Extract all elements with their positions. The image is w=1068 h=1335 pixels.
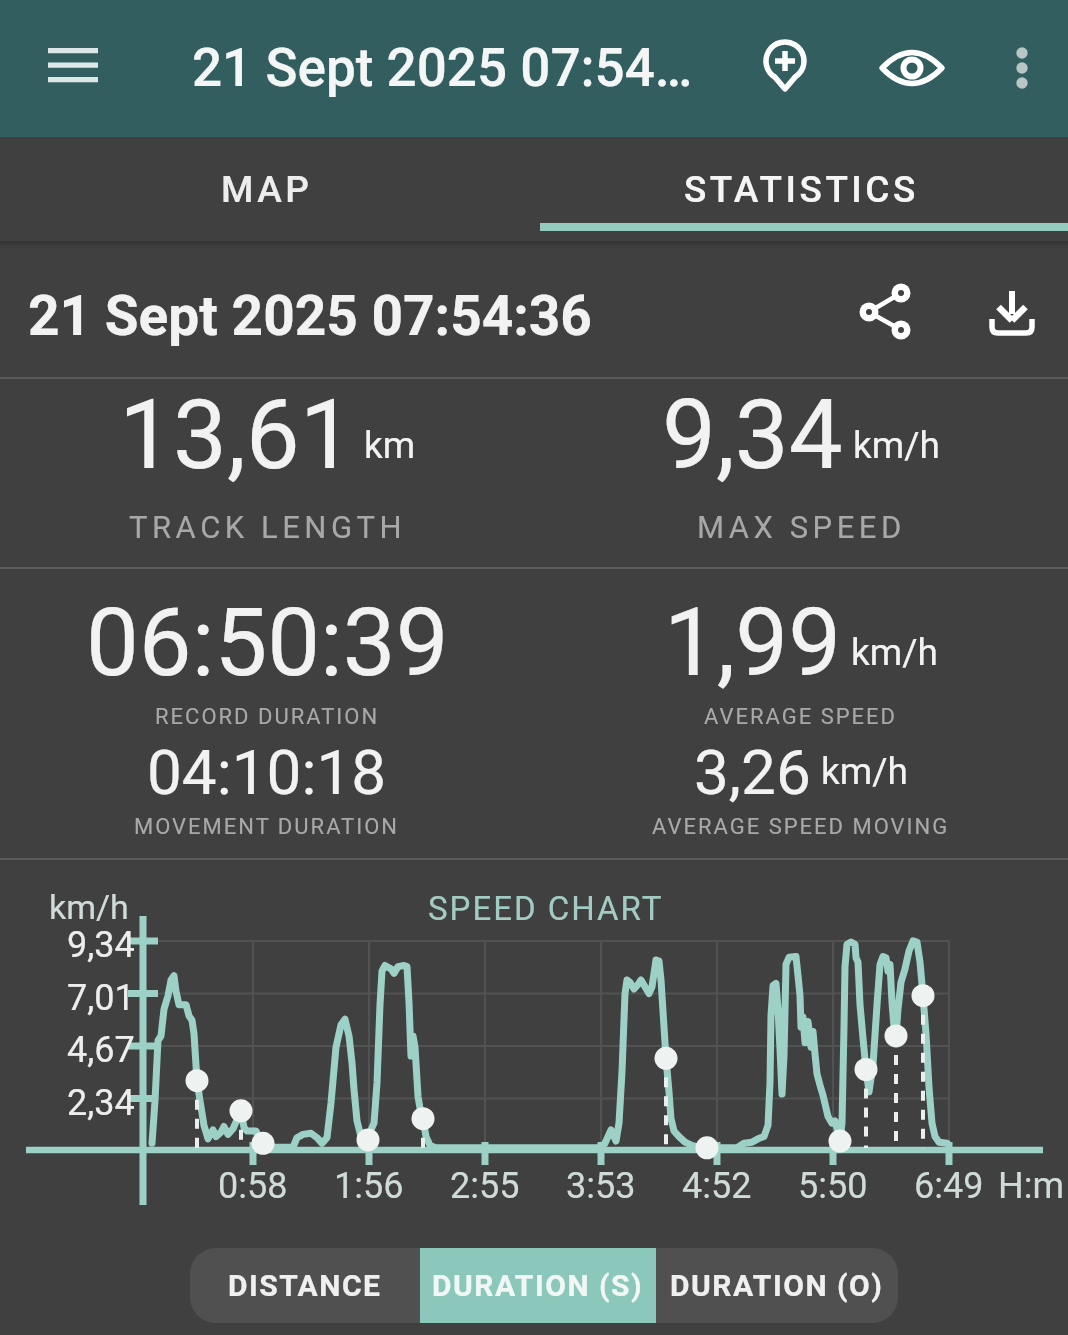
staticText: 4:52 [682, 1165, 752, 1207]
staticText: 13,61 [119, 379, 354, 492]
staticText: 1:56 [334, 1165, 404, 1207]
staticText: STATISTICS [684, 168, 919, 211]
button[interactable] [867, 20, 957, 115]
staticText: 2,34 [67, 1082, 135, 1124]
staticText: SPEED CHART [428, 889, 664, 928]
staticText: DURATION (O) [670, 1268, 884, 1303]
staticText: 7,01 [67, 977, 135, 1019]
button[interactable] [962, 263, 1062, 363]
button[interactable] [982, 20, 1062, 115]
staticText: 9,34 [662, 379, 843, 492]
staticText: 04:10:18 [147, 736, 387, 809]
staticText: DISTANCE [228, 1268, 382, 1303]
staticText: RECORD DURATION [155, 704, 380, 730]
staticText: 9,34 [67, 924, 135, 966]
staticText: AVERAGE SPEED [704, 704, 898, 730]
staticText: 3,26 [694, 736, 811, 809]
staticText: km/h [851, 631, 938, 674]
button[interactable]: DURATION (O) [656, 1248, 898, 1323]
staticText: MAP [221, 168, 313, 211]
staticText: AVERAGE SPEED MOVING [652, 814, 950, 840]
staticText: DURATION (S) [432, 1268, 644, 1303]
staticText: 0:58 [218, 1165, 288, 1207]
staticText: 1,99 [664, 588, 841, 698]
staticText: MOVEMENT DURATION [134, 814, 400, 840]
staticText: km/h [49, 887, 129, 927]
staticText: 6:49 [914, 1165, 984, 1207]
button[interactable] [28, 25, 118, 105]
staticText: 21 Sept 2025 07:54… [192, 37, 693, 99]
staticText: MAX SPEED [697, 509, 906, 545]
staticText: km [364, 424, 416, 467]
staticText: km/h [853, 424, 940, 467]
staticText: 06:50:39 [86, 588, 449, 698]
button[interactable]: MAP [0, 137, 534, 249]
staticText: H:m [998, 1165, 1064, 1207]
staticText: 4,67 [67, 1029, 135, 1071]
button[interactable] [740, 20, 830, 115]
staticText: 5:50 [798, 1165, 868, 1207]
button[interactable] [834, 263, 934, 363]
button[interactable]: DURATION (S) [420, 1248, 656, 1323]
staticText: 2:55 [450, 1165, 520, 1207]
button[interactable]: STATISTICS [534, 137, 1068, 249]
staticText: km/h [821, 750, 908, 793]
staticText: 21 Sept 2025 07:54:36 [28, 284, 592, 348]
staticText: 3:53 [566, 1165, 636, 1207]
button[interactable]: DISTANCE [190, 1248, 420, 1323]
staticText: TRACK LENGTH [129, 509, 407, 545]
